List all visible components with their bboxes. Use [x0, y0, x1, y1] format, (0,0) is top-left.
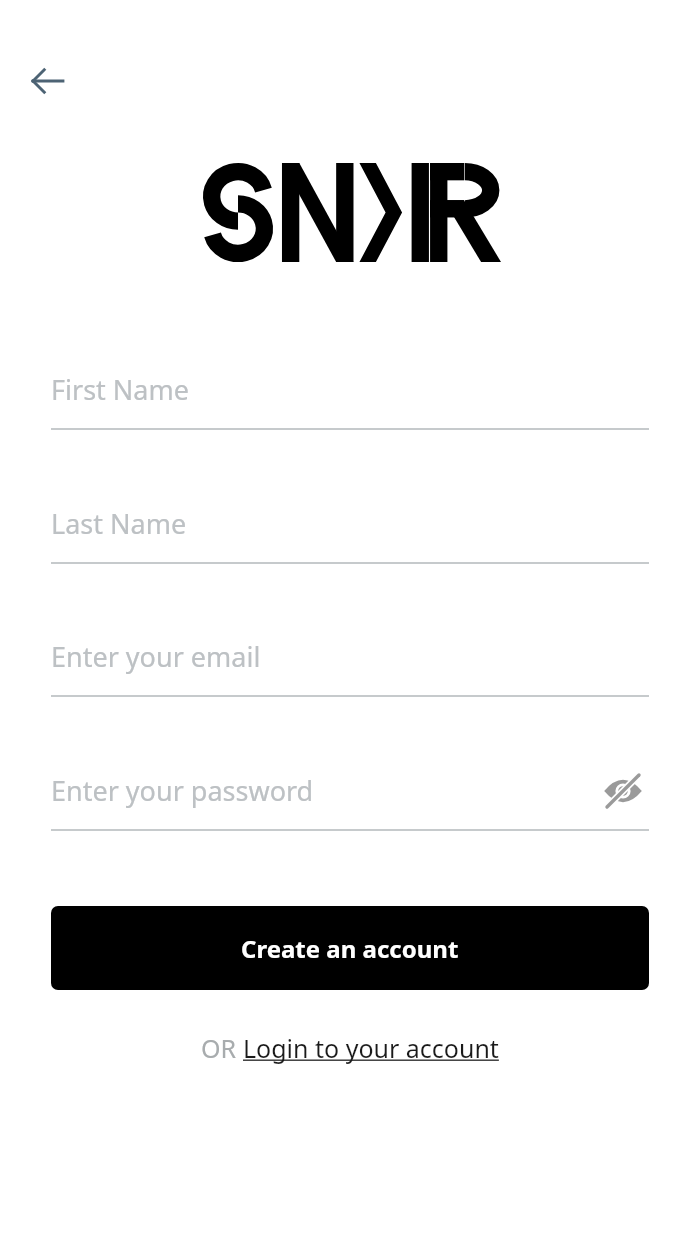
staticText: OR — [201, 1031, 243, 1065]
staticText: Enter your email — [51, 638, 261, 675]
staticText: Create an account — [241, 932, 459, 965]
staticText: Login to your account — [243, 1031, 499, 1065]
staticText: First Name — [51, 371, 189, 408]
button[interactable]: Show password — [597, 765, 649, 817]
button[interactable]: Login to your account — [243, 1031, 499, 1065]
button[interactable]: Create an account — [51, 906, 649, 990]
button[interactable]: Last Name — [51, 493, 649, 564]
staticText: Last Name — [51, 505, 187, 542]
button[interactable]: Enter your email — [51, 626, 649, 697]
button[interactable]: First Name — [51, 359, 649, 430]
button[interactable]: Enter your password — [51, 760, 649, 831]
button[interactable]: Back — [18, 51, 78, 111]
staticText: Enter your password — [51, 772, 314, 809]
